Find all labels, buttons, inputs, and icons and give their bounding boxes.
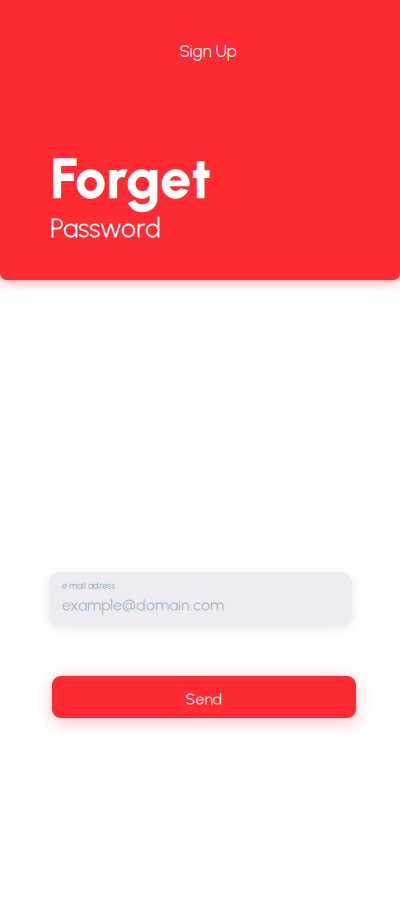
- staticText: e mail adress: [62, 580, 115, 591]
- button[interactable]: e mail adress: [49, 572, 352, 626]
- button[interactable]: Send: [52, 676, 356, 718]
- staticText: Forget: [50, 145, 211, 212]
- staticText: Send: [185, 689, 222, 709]
- staticText: Password: [50, 212, 161, 244]
- staticText: Sign Up: [179, 41, 236, 61]
- staticText: example@domain.com: [62, 595, 224, 614]
- button[interactable]: Sign Up: [148, 36, 268, 66]
